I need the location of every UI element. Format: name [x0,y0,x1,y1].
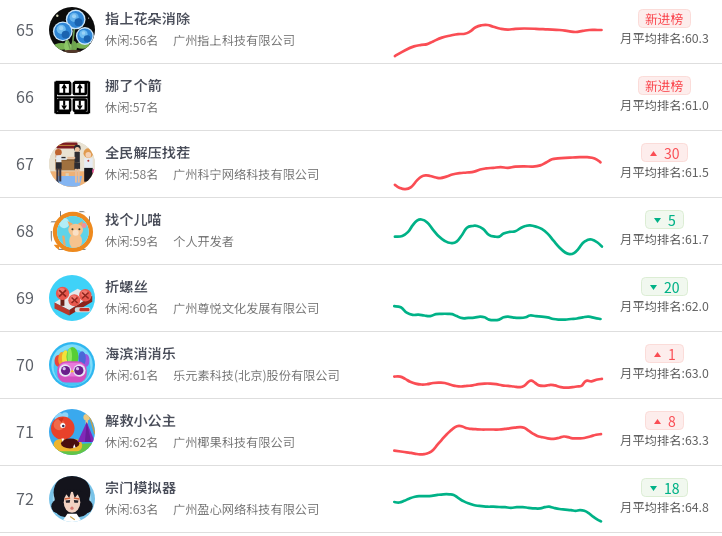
staticText: 新进榜 [645,9,684,28]
button[interactable]: 70 [0,331,722,398]
button[interactable]: 67 [0,130,722,197]
staticText: 71 [16,419,34,442]
staticText: 乐元素科技(北京)股份有限公司 [173,366,340,384]
staticText: 69 [16,285,34,308]
staticText: 月平均排名:61.0 [620,96,709,114]
staticText: 67 [16,151,34,174]
staticText: 广州盈心网络科技有限公司 [173,500,320,518]
staticText: 月平均排名:61.5 [620,163,709,181]
staticText: 广州科宁网络科技有限公司 [173,165,320,183]
staticText: 找个儿喵 [105,209,162,230]
staticText: 广州椰果科技有限公司 [173,433,295,451]
staticText: 休闲:62名 [105,433,159,451]
other: Rank down [654,218,661,223]
staticText: 折螺丝 [105,276,148,297]
button[interactable]: 69 [0,264,722,331]
other: Rank down [650,285,657,290]
staticText: 月平均排名:62.0 [620,297,709,315]
other: 海滨消消乐 app icon [49,342,95,388]
staticText: 66 [16,84,34,107]
staticText: 广州指上科技有限公司 [173,31,295,49]
staticText: 68 [16,218,34,241]
staticText: 休闲:57名 [105,98,159,116]
staticText: 8 [668,411,676,430]
other: 折螺丝 app icon [49,275,95,321]
button[interactable]: 65 [0,0,722,63]
staticText: 休闲:63名 [105,500,159,518]
staticText: 挪了个箭 [105,75,162,96]
other: 解救小公主 app icon [49,409,95,455]
staticText: 休闲:61名 [105,366,159,384]
other: Rank down [650,486,657,491]
staticText: 休闲:56名 [105,31,159,49]
staticText: 全民解压找茬 [105,142,191,163]
staticText: 72 [16,486,34,509]
button[interactable]: 68 [0,197,722,264]
staticText: 广州尊悦文化发展有限公司 [173,299,320,317]
staticText: 宗门模拟器 [105,477,176,498]
staticText: 月平均排名:63.0 [620,364,709,382]
staticText: 解救小公主 [105,410,176,431]
button[interactable]: 72 [0,465,722,532]
other: 全民解压找茬 app icon [49,141,95,187]
staticText: 30 [664,143,680,162]
button[interactable]: 66 [0,63,722,130]
other: 指上花朵消除 app icon [49,7,95,53]
staticText: 海滨消消乐 [105,343,176,364]
staticText: 1 [668,344,676,363]
other: 宗门模拟器 app icon [49,476,95,522]
other: 找个儿喵 app icon [49,208,95,254]
staticText: 70 [16,352,34,375]
staticText: 18 [664,478,680,497]
staticText: 65 [16,17,34,40]
staticText: 个人开发者 [173,232,234,250]
staticText: 新进榜 [645,76,684,95]
button[interactable]: 71 [0,398,722,465]
other: Rank up [654,419,661,424]
staticText: 月平均排名:61.7 [620,230,709,248]
staticText: 休闲:60名 [105,299,159,317]
staticText: 月平均排名:64.8 [620,498,709,516]
staticText: 指上花朵消除 [105,8,191,29]
staticText: 月平均排名:60.3 [620,29,709,47]
other: Rank up [654,352,661,357]
other: Rank up [650,151,657,156]
staticText: 5 [668,210,676,229]
staticText: 月平均排名:63.3 [620,431,709,449]
staticText: 休闲:59名 [105,232,159,250]
staticText: 休闲:58名 [105,165,159,183]
staticText: 20 [664,277,680,296]
other: 挪了个箭 app icon [49,74,95,120]
